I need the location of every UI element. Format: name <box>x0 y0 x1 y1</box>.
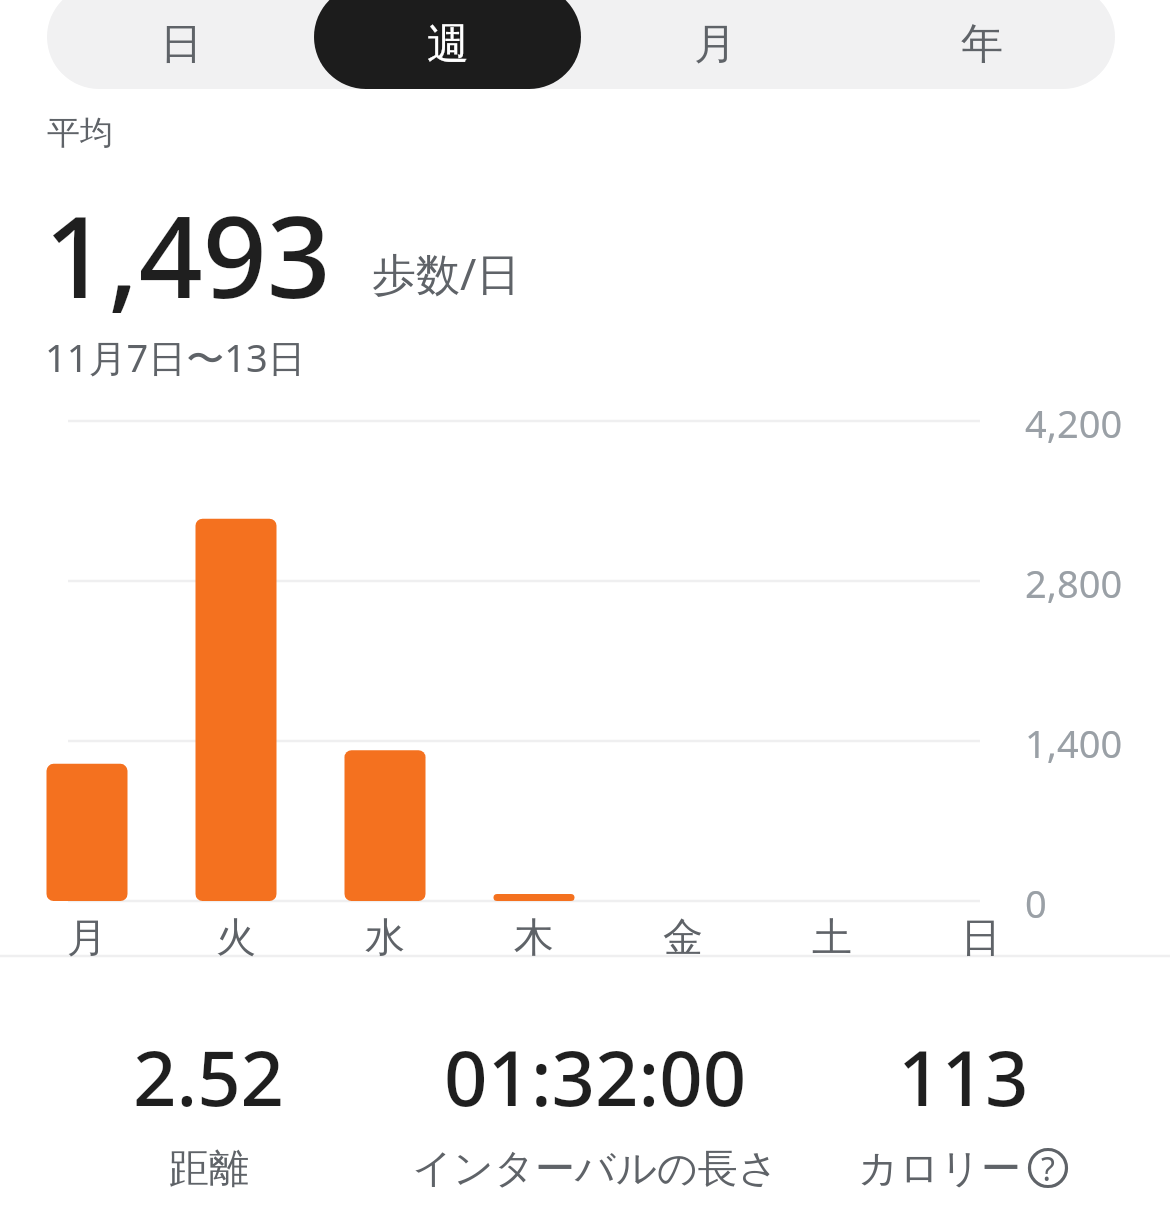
staticText: 平均 <box>47 112 113 154</box>
staticText: 113 <box>898 1025 1029 1129</box>
button[interactable]: 日 <box>47 0 314 89</box>
staticText: 歩数/日 <box>372 243 521 303</box>
staticText: 月 <box>694 18 736 71</box>
staticText: 1,400 <box>1025 717 1123 769</box>
button[interactable]: 01:32:00 <box>400 1025 790 1193</box>
button[interactable]: 113 <box>768 1025 1158 1193</box>
staticText: 月 <box>52 912 122 962</box>
staticText: 11月7日〜13日 <box>45 331 306 383</box>
staticText: 01:32:00 <box>444 1025 747 1129</box>
staticText: 2,800 <box>1025 557 1123 609</box>
staticText: 距離 <box>169 1143 249 1193</box>
staticText: 水 <box>350 912 420 962</box>
staticText: 金 <box>648 912 718 962</box>
staticText: 2.52 <box>133 1025 285 1129</box>
staticText: カロリー <box>858 1143 1021 1193</box>
button[interactable]: 年 <box>848 0 1115 89</box>
staticText: 日 <box>946 912 1016 962</box>
staticText: 4,200 <box>1025 397 1123 449</box>
staticText: 年 <box>961 18 1003 71</box>
staticText: 日 <box>160 18 202 71</box>
button[interactable]: 月 <box>581 0 848 89</box>
staticText: 木 <box>499 912 569 962</box>
staticText: 0 <box>1025 877 1047 929</box>
button[interactable]: 2.52 <box>14 1025 404 1193</box>
staticText: インターバルの長さ <box>412 1143 779 1193</box>
staticText: 土 <box>797 912 867 962</box>
staticText: 火 <box>201 912 271 962</box>
button[interactable]: 週 <box>314 0 581 89</box>
staticText: ? <box>1041 1147 1055 1189</box>
staticText: 週 <box>427 18 469 71</box>
button[interactable]: ヘルプ <box>1027 1147 1069 1189</box>
staticText: 1,493 <box>44 178 331 331</box>
